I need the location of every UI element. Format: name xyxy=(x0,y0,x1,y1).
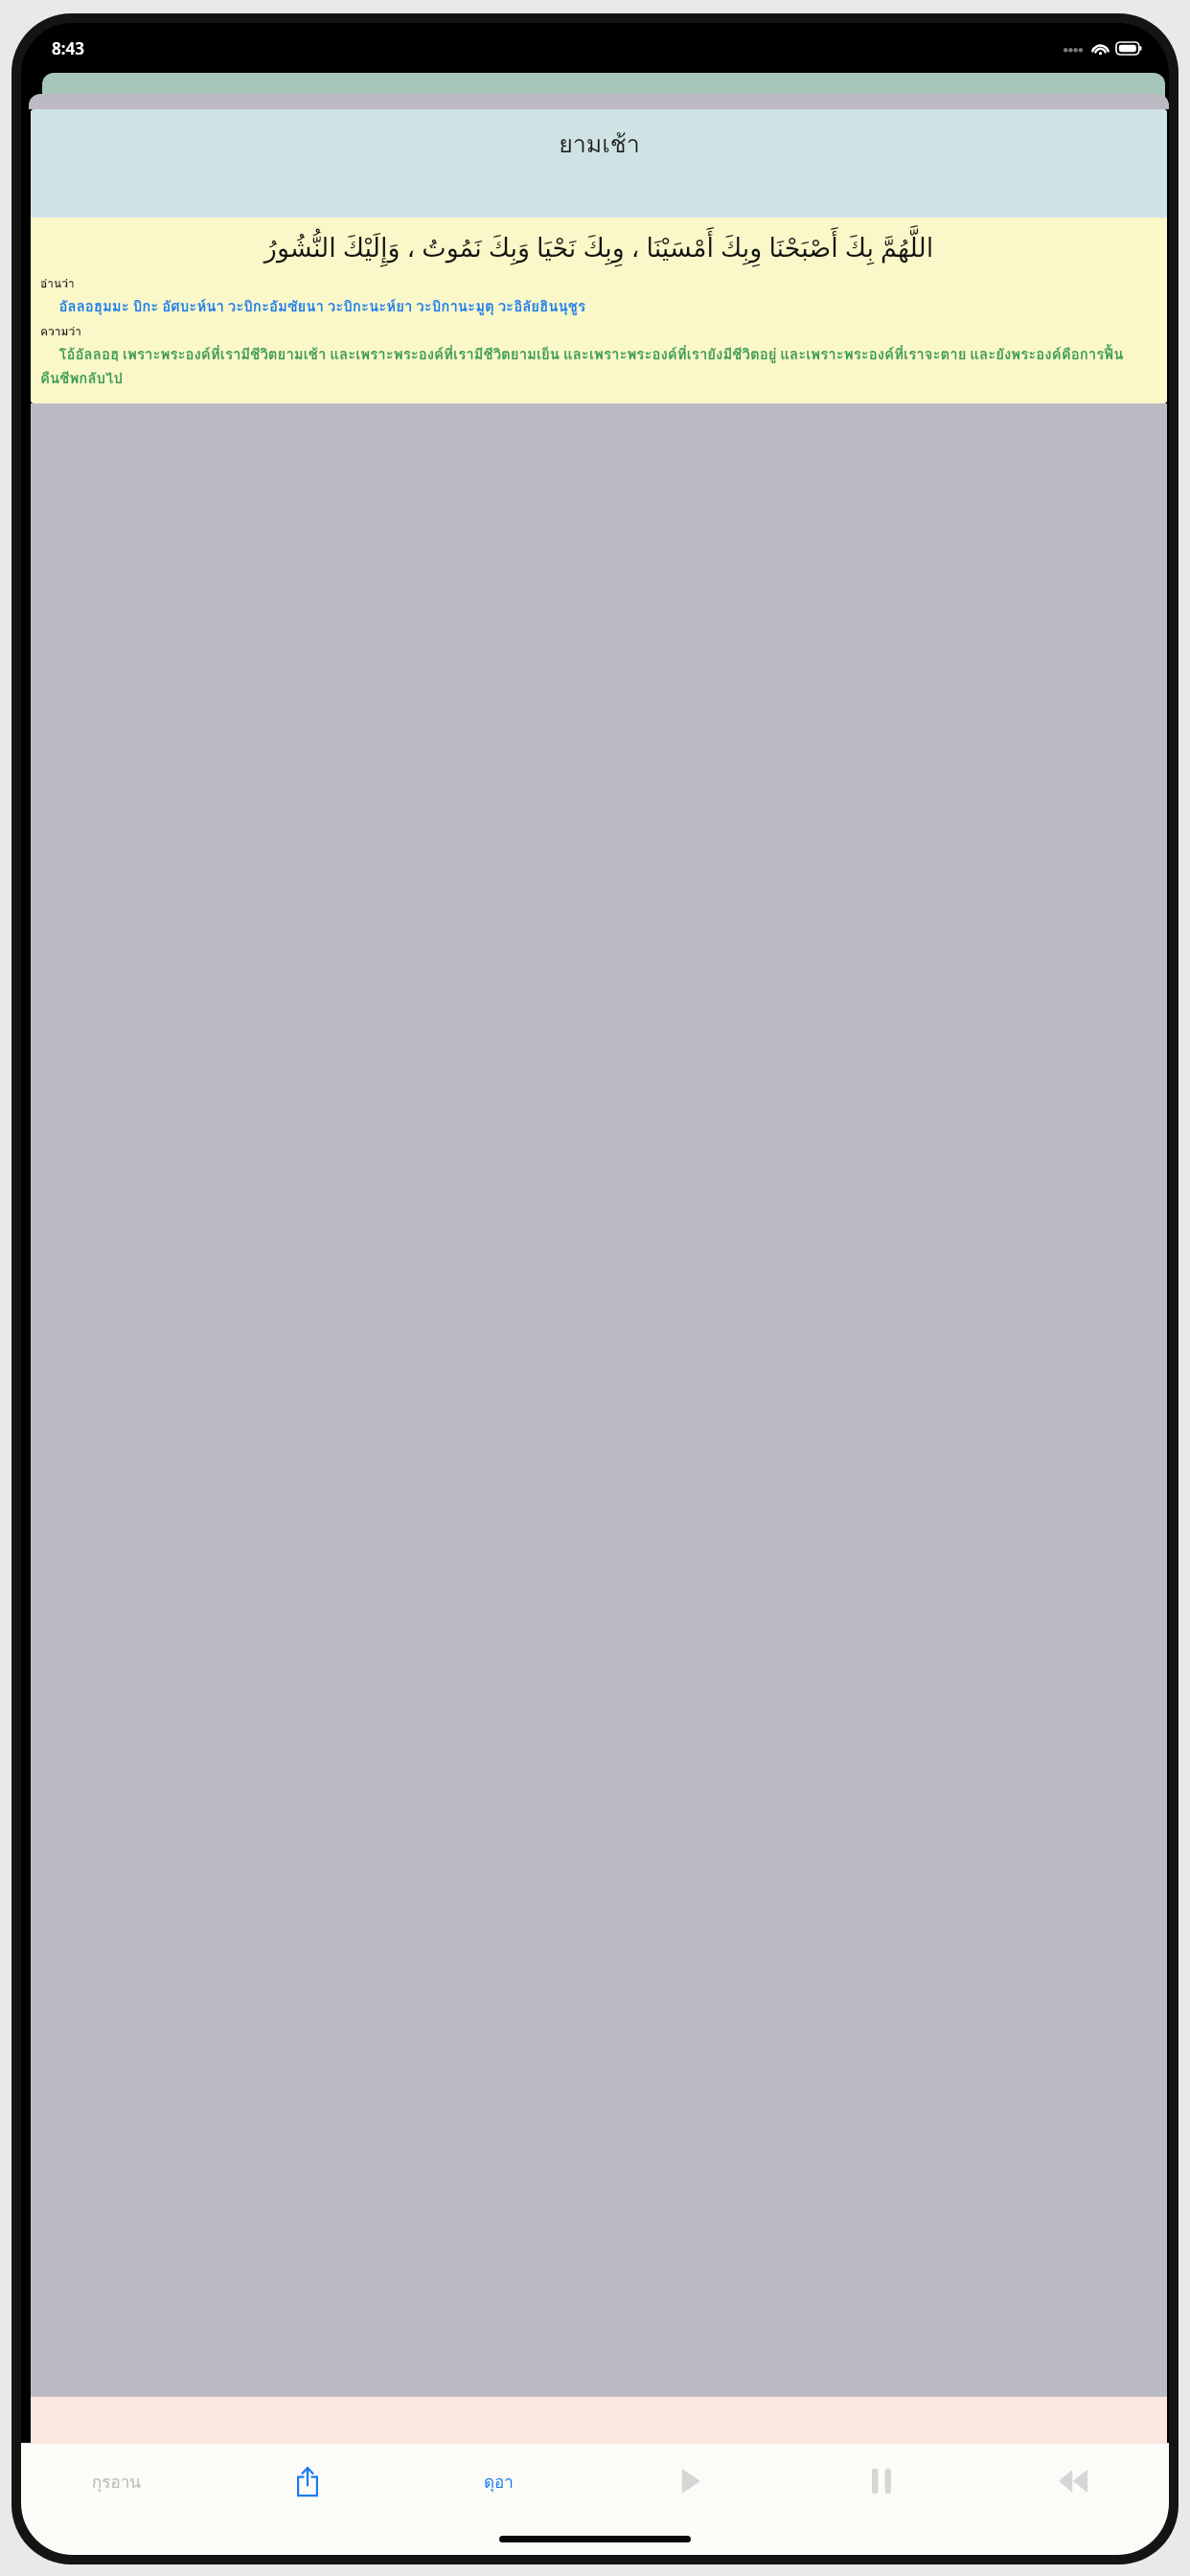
button[interactable]: ยามเช้า xyxy=(31,109,1167,403)
button[interactable]: Pause xyxy=(786,2444,977,2518)
staticText: อัลลอฮุมมะ บิกะ อัศบะห์นา วะบิกะอัมซัยนา… xyxy=(40,295,1157,318)
button[interactable]: Share xyxy=(212,2444,402,2518)
button[interactable]: ดุอา xyxy=(402,2444,594,2518)
staticText: โอ้อัลลอฮฺ เพราะพระองค์ที่เรามีชีวิตยามเ… xyxy=(40,343,1157,390)
staticText: ยามเช้า xyxy=(559,125,640,163)
staticText: ดุอา xyxy=(484,2469,514,2495)
button[interactable]: Play xyxy=(594,2444,786,2518)
button[interactable]: กุรอาน xyxy=(21,2444,212,2518)
staticText: กุรอาน xyxy=(92,2469,141,2495)
staticText: اللَّهُمَّ بِكَ أَصْبَحْنَا وِبِكَ أَمْس… xyxy=(40,229,1157,264)
button[interactable]: Rewind xyxy=(977,2444,1169,2518)
staticText: อ่านว่า xyxy=(40,274,75,292)
staticText: ความว่า xyxy=(40,322,81,340)
staticText: 8:43 xyxy=(52,37,84,59)
